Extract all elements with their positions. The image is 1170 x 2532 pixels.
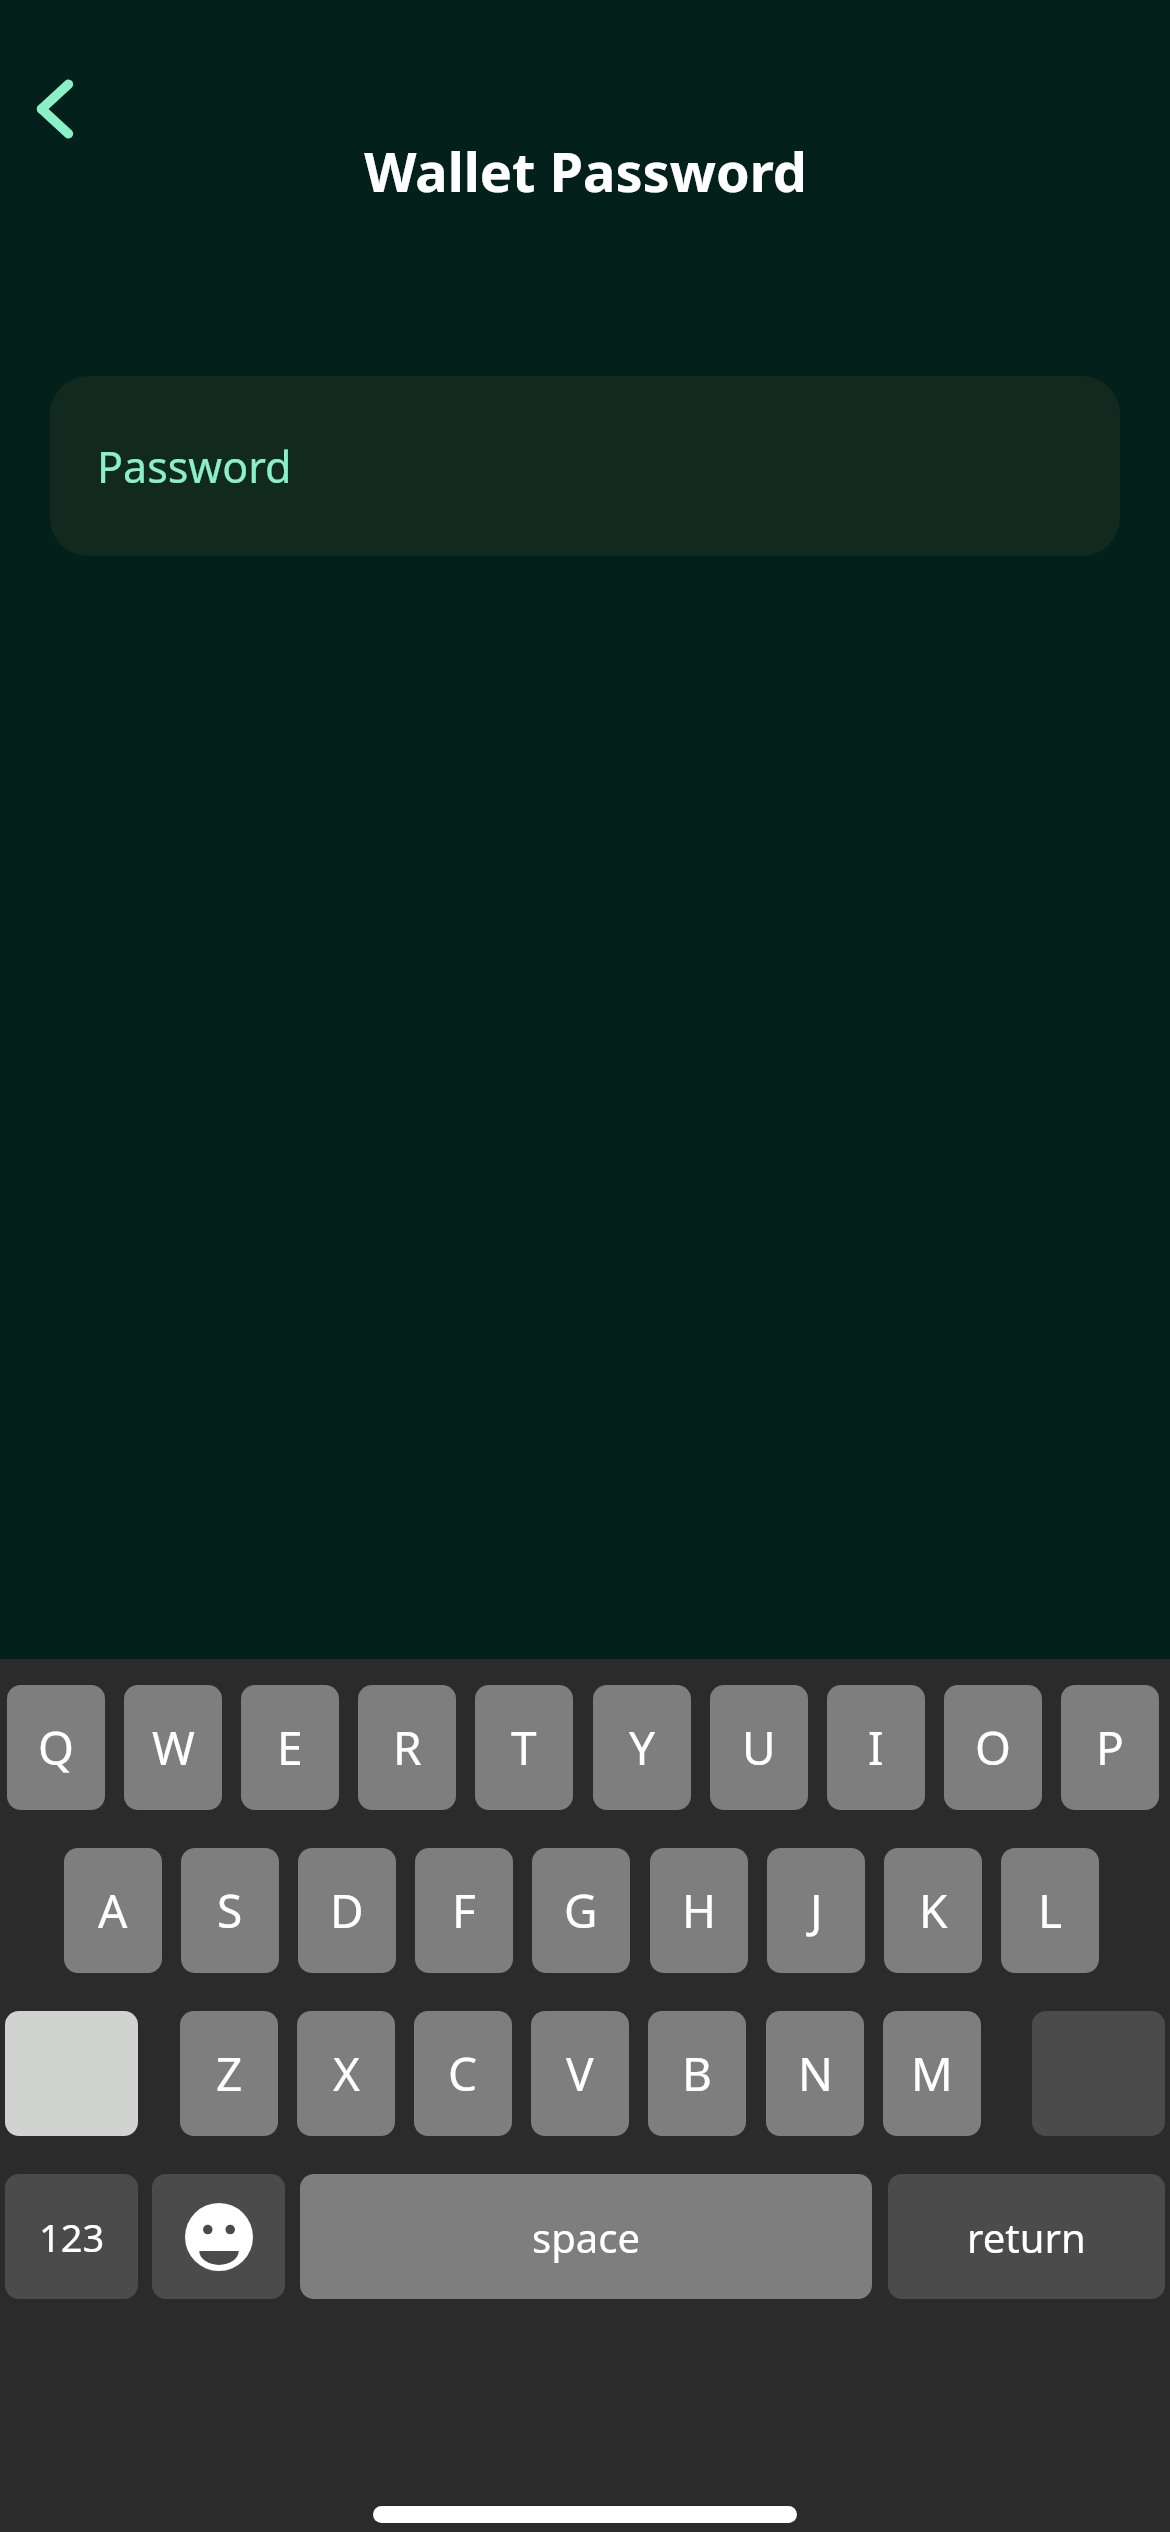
staticText: P (1096, 1716, 1124, 1779)
button[interactable]: O (944, 1685, 1042, 1810)
button[interactable]: K (884, 1848, 982, 1973)
button[interactable]: S (181, 1848, 279, 1973)
button[interactable]: B (648, 2011, 746, 2136)
staticText: A (98, 1879, 128, 1942)
staticText: G (564, 1879, 598, 1942)
staticText: R (393, 1716, 422, 1779)
button[interactable]: Emoji keyboard (152, 2174, 285, 2299)
button[interactable]: G (532, 1848, 630, 1973)
staticText: I (868, 1716, 884, 1779)
button[interactable]: R (358, 1685, 456, 1810)
button[interactable]: Delete (1032, 2011, 1165, 2136)
button[interactable]: J (767, 1848, 865, 1973)
button[interactable]: M (883, 2011, 981, 2136)
button[interactable]: space (300, 2174, 872, 2299)
staticText: M (911, 2042, 953, 2105)
staticText: F (452, 1879, 476, 1942)
button[interactable]: V (531, 2011, 629, 2136)
staticText: B (682, 2042, 712, 2105)
button[interactable]: Q (7, 1685, 105, 1810)
button[interactable]: E (241, 1685, 339, 1810)
staticText: V (566, 2042, 594, 2105)
button[interactable]: P (1061, 1685, 1159, 1810)
button[interactable]: L (1001, 1848, 1099, 1973)
button[interactable]: C (414, 2011, 512, 2136)
staticText: Y (629, 1716, 656, 1779)
staticText: H (682, 1879, 717, 1942)
button[interactable]: H (650, 1848, 748, 1973)
button[interactable]: U (710, 1685, 808, 1810)
staticText: N (798, 2042, 833, 2105)
button[interactable]: Y (593, 1685, 691, 1810)
button[interactable]: Z (180, 2011, 278, 2136)
button[interactable]: D (298, 1848, 396, 1973)
button[interactable]: I (827, 1685, 925, 1810)
button[interactable]: Back (16, 70, 94, 148)
button[interactable]: A (64, 1848, 162, 1973)
button[interactable]: T (475, 1685, 573, 1810)
staticText: S (217, 1879, 243, 1942)
staticText: 123 (39, 2211, 105, 2263)
button[interactable]: 123 (5, 2174, 138, 2299)
staticText: space (532, 2210, 640, 2264)
button[interactable]: F (415, 1848, 513, 1973)
button[interactable]: Shift (5, 2011, 138, 2136)
staticText: L (1038, 1879, 1063, 1942)
button[interactable]: Password (50, 376, 1120, 556)
staticText: return (967, 2210, 1086, 2264)
staticText: D (330, 1879, 364, 1942)
button[interactable]: return (888, 2174, 1165, 2299)
button[interactable]: N (766, 2011, 864, 2136)
staticText: J (810, 1879, 823, 1942)
staticText: C (448, 2042, 478, 2105)
staticText: Q (38, 1716, 74, 1779)
staticText: Z (216, 2042, 243, 2105)
button[interactable]: X (297, 2011, 395, 2136)
staticText: T (511, 1716, 537, 1779)
staticText: X (333, 2042, 360, 2105)
staticText: U (742, 1716, 776, 1779)
button[interactable]: W (124, 1685, 222, 1810)
staticText: W (152, 1716, 195, 1779)
staticText: K (919, 1879, 948, 1942)
staticText: Password (97, 437, 292, 496)
staticText: O (975, 1716, 1011, 1779)
staticText: E (277, 1716, 303, 1779)
staticText: Wallet Password (364, 134, 807, 208)
